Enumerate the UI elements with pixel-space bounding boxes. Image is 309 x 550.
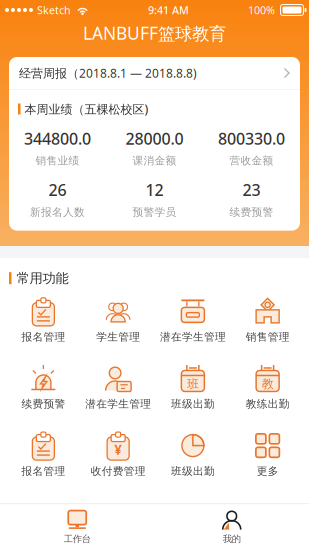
button[interactable]: 经营周报（2018.8.1 — 2018.8.8) xyxy=(9,57,300,89)
button[interactable]: 潜在学生管理 xyxy=(81,364,156,411)
staticText: 28000.0 xyxy=(125,128,183,149)
staticText: 销售业绩 xyxy=(35,154,79,167)
staticText: Sketch xyxy=(37,3,71,17)
staticText: 学生管理 xyxy=(96,330,140,343)
button[interactable]: 班级出勤 xyxy=(155,432,230,478)
staticText: 800330.0 xyxy=(218,128,285,149)
staticText: 预警学员 xyxy=(132,205,176,219)
staticText: ¥ xyxy=(114,441,122,458)
staticText: 教 xyxy=(262,377,274,391)
staticText: 工作台 xyxy=(64,533,91,545)
staticText: 课消金额 xyxy=(132,154,176,167)
staticText: 班 xyxy=(187,377,199,391)
button[interactable]: 报名管理 xyxy=(6,297,81,343)
staticText: 潜在学生管理 xyxy=(160,330,226,343)
staticText: 班级出勤 xyxy=(171,397,215,411)
staticText: 收付费管理 xyxy=(91,465,146,478)
staticText: 我的 xyxy=(223,533,241,545)
staticText: 23 xyxy=(242,179,260,200)
staticText: 营收金额 xyxy=(229,154,273,167)
staticText: 销售管理 xyxy=(246,330,290,343)
staticText: 报名管理 xyxy=(21,465,65,478)
staticText: LANBUFF篮球教育 xyxy=(83,21,226,44)
button[interactable]: 潜在学生管理 xyxy=(155,297,230,343)
staticText: 9:41 AM xyxy=(148,3,189,17)
button[interactable]: ¥ xyxy=(81,432,156,478)
staticText: 100% xyxy=(248,3,275,17)
staticText: 更多 xyxy=(257,465,279,478)
staticText: 常用功能 xyxy=(16,270,68,286)
button[interactable]: 教 xyxy=(230,364,305,411)
staticText: 续费预警 xyxy=(21,397,65,411)
staticText: 续费预警 xyxy=(229,205,273,219)
staticText: 教练出勤 xyxy=(246,397,290,411)
button[interactable]: 续费预警 xyxy=(6,364,81,411)
staticText: 经营周报（2018.8.1 — 2018.8.8) xyxy=(19,65,197,81)
button[interactable]: 更多 xyxy=(230,432,305,478)
staticText: 12 xyxy=(145,179,163,200)
button[interactable]: 学生管理 xyxy=(81,297,156,343)
button[interactable]: 报名管理 xyxy=(6,432,81,478)
staticText: 26 xyxy=(48,179,66,200)
staticText: 新报名人数 xyxy=(30,205,85,219)
staticText: 344800.0 xyxy=(24,128,91,149)
staticText: 潜在学生管理 xyxy=(85,397,151,411)
button[interactable]: 我的 xyxy=(154,504,309,545)
staticText: 本周业绩（五棵松校区) xyxy=(24,101,148,117)
button[interactable]: 班 xyxy=(155,364,230,411)
button[interactable]: 工作台 xyxy=(0,504,154,545)
staticText: 班级出勤 xyxy=(171,465,215,478)
staticText: 报名管理 xyxy=(21,330,65,343)
button[interactable]: 销售管理 xyxy=(230,297,305,343)
